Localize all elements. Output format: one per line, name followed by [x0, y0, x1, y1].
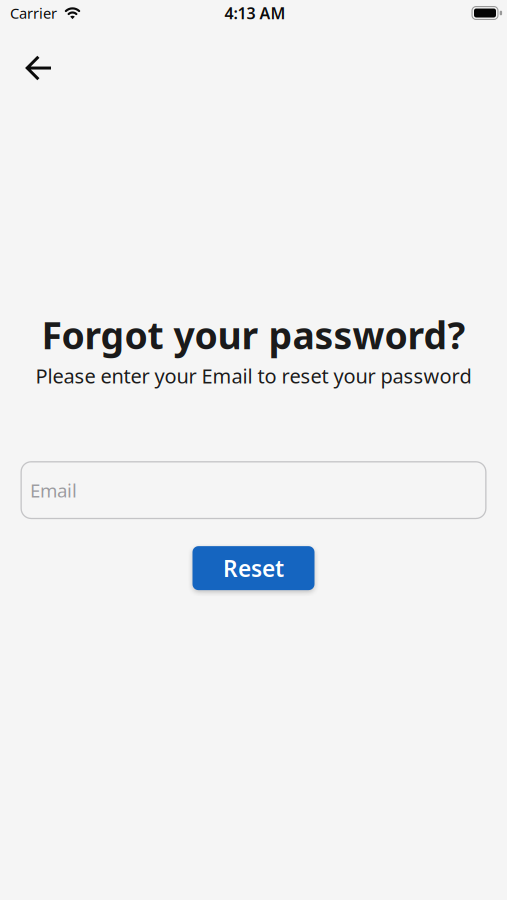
staticText: Please enter your Email to reset your pa… [35, 363, 471, 389]
staticText: Email [30, 478, 77, 502]
staticText: Carrier [10, 3, 57, 23]
staticText: 4:13 AM [224, 2, 285, 24]
staticText: Forgot your password? [41, 310, 465, 360]
button[interactable]: Back [26, 56, 51, 80]
button[interactable]: Reset [192, 546, 314, 590]
button[interactable]: Email [20, 461, 486, 519]
staticText: Reset [223, 553, 284, 583]
